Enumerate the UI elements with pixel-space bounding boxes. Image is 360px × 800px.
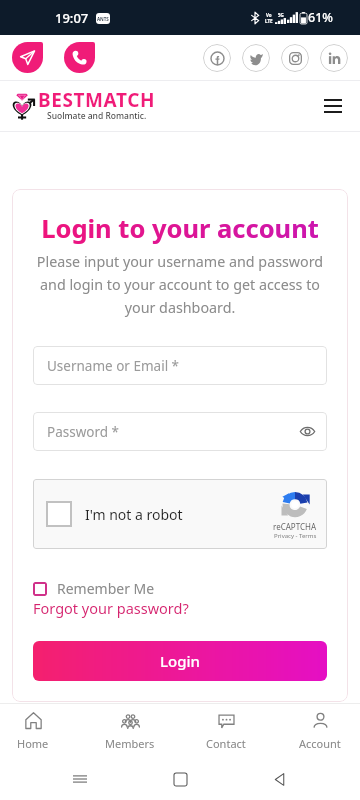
staticText: Password * <box>47 423 120 441</box>
button[interactable]: Login <box>33 641 327 681</box>
button[interactable]: Back <box>260 759 300 799</box>
staticText: I'm not a robot <box>85 505 183 524</box>
button[interactable]: Twitter <box>242 44 270 72</box>
button[interactable]: Telegram <box>12 42 43 73</box>
staticText: Please input your username and password … <box>33 252 327 317</box>
button[interactable]: Contact <box>184 704 268 758</box>
staticText: BESTMATCH <box>38 87 156 113</box>
button[interactable]: Home <box>0 704 75 758</box>
staticText: Account <box>299 736 341 751</box>
button[interactable]: Menu <box>318 93 348 119</box>
button[interactable]: Home <box>160 759 200 799</box>
staticText: Suolmate and Romantic. <box>47 110 147 122</box>
staticText: Members <box>105 736 155 751</box>
staticText: Remember Me <box>57 579 155 598</box>
button[interactable]: Account <box>278 704 360 758</box>
button[interactable]: Recent apps <box>60 759 100 799</box>
staticText: 19:07 <box>55 9 89 27</box>
button[interactable]: LinkedIn <box>320 44 348 72</box>
button[interactable]: Forgot your password? <box>33 598 189 618</box>
button[interactable]: Members <box>88 704 172 758</box>
staticText: Username or Email * <box>47 357 180 375</box>
staticText: Login to your account <box>33 211 327 246</box>
staticText: Contact <box>206 736 246 751</box>
staticText: 5G <box>278 12 284 18</box>
staticText: ANTS <box>97 16 109 22</box>
staticText: LTE <box>265 18 273 24</box>
button[interactable]: Call <box>64 42 95 73</box>
button[interactable]: I'm not a robot <box>46 501 72 527</box>
button[interactable]: Show password <box>300 426 315 437</box>
button[interactable]: Instagram <box>281 44 309 72</box>
staticText: Vo <box>266 12 272 18</box>
staticText: Privacy - Terms <box>274 532 317 540</box>
button[interactable]: Password * <box>33 412 327 451</box>
staticText: Home <box>17 736 49 751</box>
button[interactable]: Remember Me <box>33 579 155 598</box>
button[interactable]: Username or Email * <box>33 346 327 385</box>
staticText: 61% <box>308 9 333 26</box>
staticText: reCAPTCHA <box>273 521 317 532</box>
staticText: Login <box>160 651 200 671</box>
button[interactable]: Facebook <box>203 44 231 72</box>
